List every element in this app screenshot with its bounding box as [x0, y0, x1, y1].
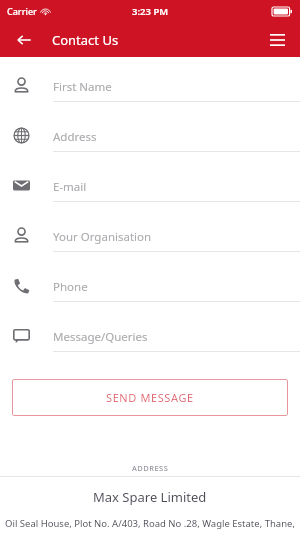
staticText: Phone [53, 279, 88, 295]
button[interactable]: Message/Queries [0, 317, 300, 367]
button[interactable]: SEND MESSAGE [12, 379, 288, 416]
button[interactable]: Address [0, 117, 300, 167]
staticText: First Name [53, 79, 112, 95]
staticText: 3:23 PM [132, 5, 169, 18]
staticText: Contact Us [52, 31, 119, 49]
staticText: SEND MESSAGE [106, 390, 194, 405]
staticText: Message/Queries [53, 329, 148, 345]
staticText: Address [53, 129, 97, 145]
staticText: Max Spare Limited [93, 488, 207, 506]
button[interactable]: First Name [0, 67, 300, 117]
staticText: Your Organisation [53, 229, 152, 245]
button[interactable]: Your Organisation [0, 217, 300, 267]
staticText: E-mail [53, 179, 87, 195]
staticText: Oil Seal House, Plot No. A/403, Road No … [5, 517, 295, 530]
staticText: ADDRESS [132, 463, 169, 473]
button[interactable]: Phone [0, 267, 300, 317]
button[interactable]: E-mail [0, 167, 300, 217]
button[interactable]: Menu [262, 25, 292, 55]
staticText: Carrier [7, 5, 37, 17]
button[interactable]: Back [8, 24, 40, 56]
